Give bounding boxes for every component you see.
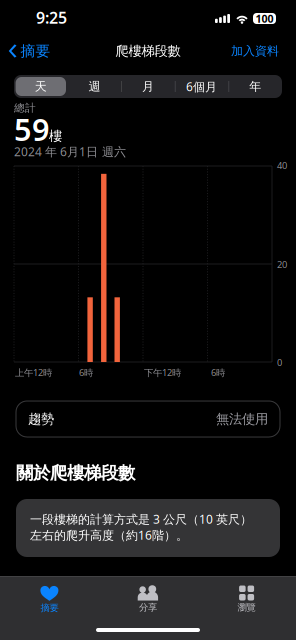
button[interactable]: 月 [121, 75, 175, 98]
staticText: 摘要 [40, 602, 58, 614]
staticText: 100 [255, 11, 273, 26]
button[interactable]: 分享 [99, 582, 197, 616]
staticText: 上午12時 [15, 366, 52, 379]
staticText: 無法使用 [216, 411, 268, 427]
staticText: 月 [142, 79, 154, 94]
staticText: 總計 [14, 101, 36, 114]
staticText: 樓 [49, 128, 62, 144]
staticText: 分享 [139, 602, 157, 613]
staticText: 週 [88, 79, 100, 94]
staticText: 下午12時 [144, 366, 181, 379]
button[interactable]: 加入資料 [225, 38, 285, 64]
staticText: 0 [277, 356, 282, 369]
staticText: 6時 [79, 366, 93, 379]
staticText: 趨勢 [28, 411, 54, 427]
staticText: 20 [277, 258, 287, 271]
staticText: 9:25 [36, 7, 67, 28]
staticText: 年 [249, 79, 261, 94]
staticText: 爬樓梯段數 [115, 43, 180, 59]
staticText: 40 [277, 159, 287, 172]
button[interactable]: 摘要 [4, 38, 56, 64]
button[interactable]: 瀏覽 [197, 582, 296, 616]
button[interactable]: 天 [14, 75, 68, 98]
staticText: 6時 [211, 366, 225, 379]
staticText: 瀏覽 [238, 602, 256, 613]
staticText: 2024 年 6月1日 週六 [14, 143, 126, 159]
staticText: 摘要 [20, 42, 50, 60]
staticText: 6個月 [186, 78, 217, 94]
staticText: 59 [14, 109, 50, 149]
staticText: 加入資料 [231, 44, 279, 58]
staticText: 天 [35, 79, 47, 94]
button[interactable]: 6個月 [175, 75, 228, 98]
staticText: 左右的爬升高度（約16階）。 [30, 527, 188, 543]
staticText: 關於爬樓梯段數 [16, 462, 135, 484]
staticText: 一段樓梯的計算方式是 3 公尺（10 英尺） [30, 511, 252, 527]
button[interactable]: 週 [68, 75, 121, 98]
button[interactable]: 年 [228, 75, 282, 98]
button[interactable]: 摘要 [0, 582, 99, 616]
button[interactable]: 趨勢 [16, 401, 280, 437]
